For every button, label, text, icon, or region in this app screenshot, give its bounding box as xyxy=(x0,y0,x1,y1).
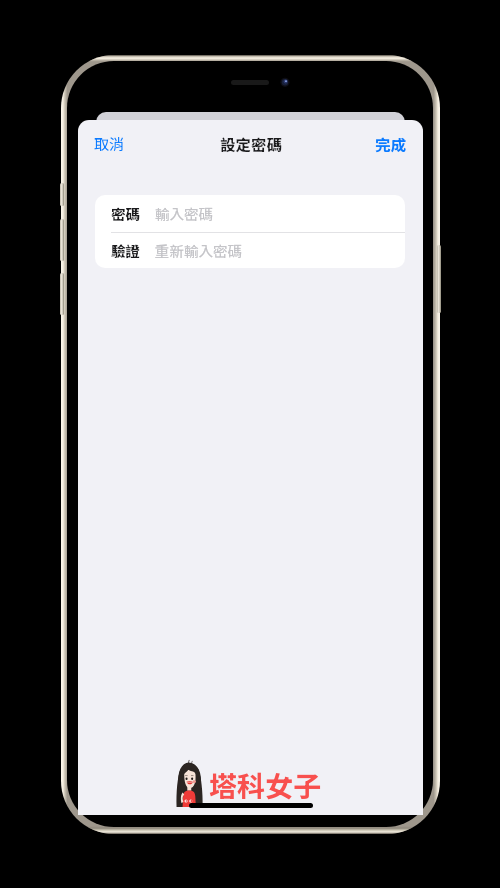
staticText: 重新輸入密碼 xyxy=(155,240,242,261)
staticText: 密碼 xyxy=(111,203,140,224)
button[interactable]: 密碼 xyxy=(95,195,405,232)
staticText: 完成 xyxy=(375,133,407,155)
button[interactable]: 驗證 xyxy=(95,232,405,268)
staticText: 設定密碼 xyxy=(220,133,283,155)
staticText: 驗證 xyxy=(111,240,140,261)
staticText: 取消 xyxy=(94,133,125,155)
button[interactable]: 完成 xyxy=(370,128,412,160)
staticText: 輸入密碼 xyxy=(155,203,213,224)
staticText: 塔科女子 xyxy=(209,765,322,806)
button[interactable]: 取消 xyxy=(89,128,130,160)
